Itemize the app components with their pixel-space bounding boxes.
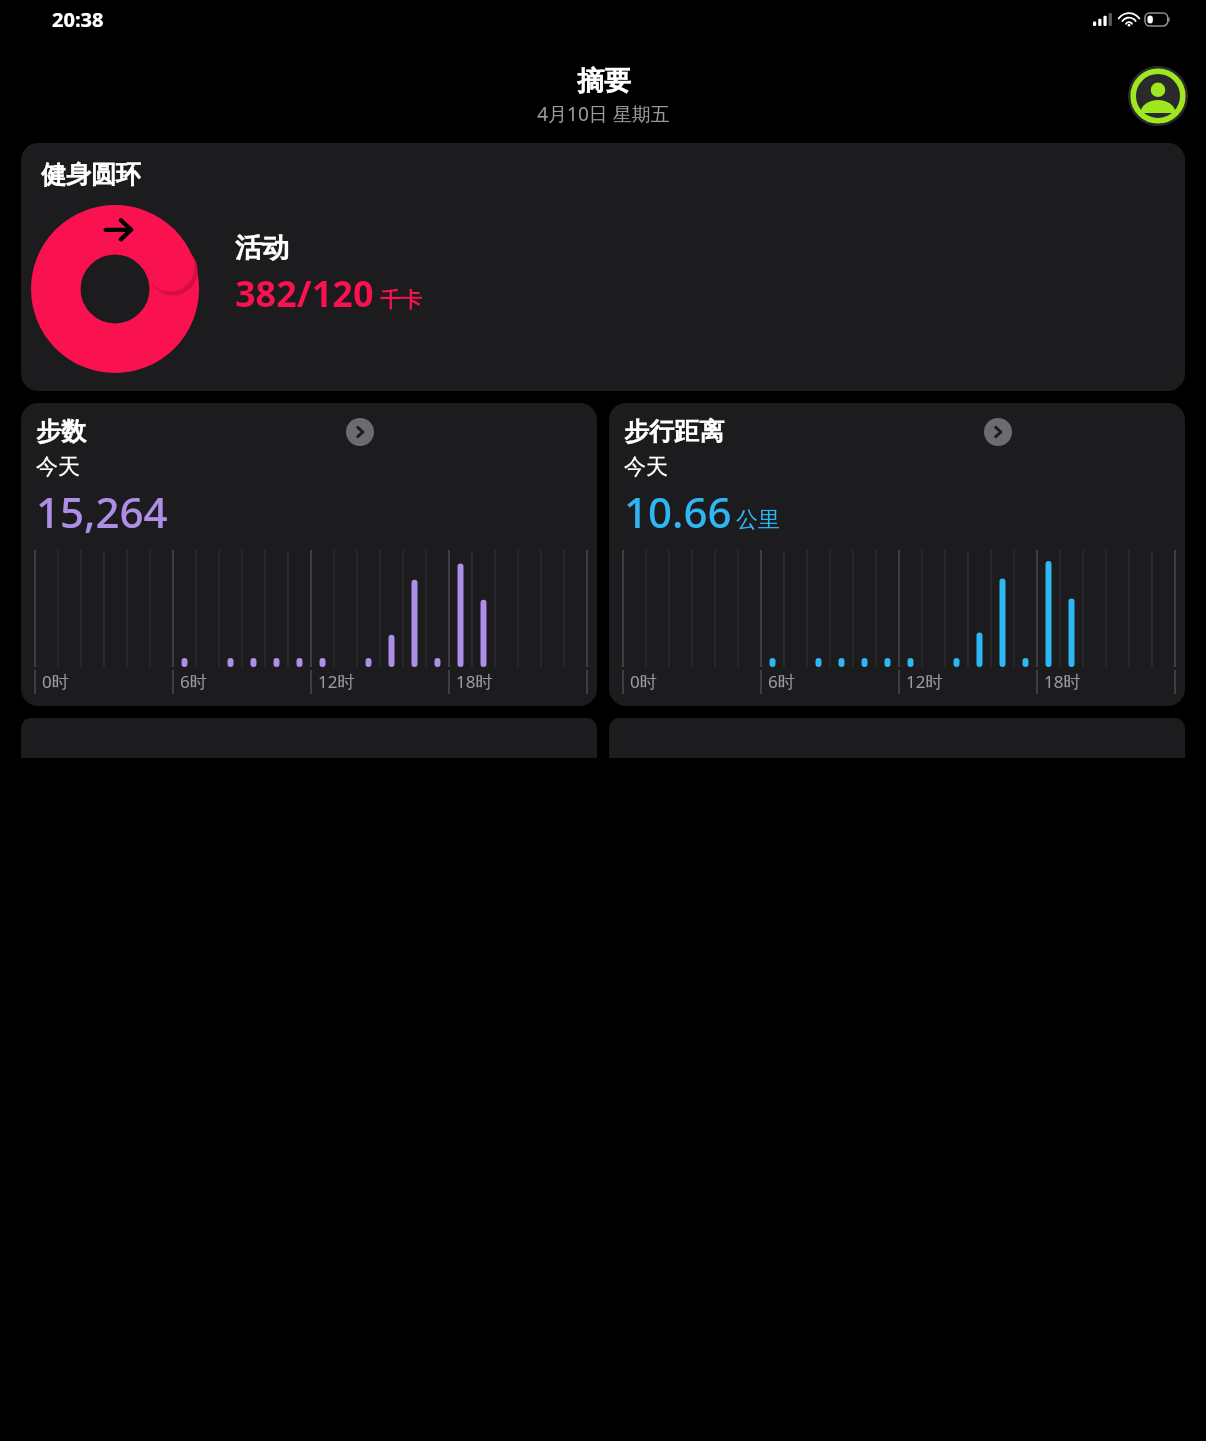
staticText: 15,264 (36, 483, 168, 540)
staticText: 0时 (630, 670, 657, 693)
staticText: 18时 (1044, 670, 1081, 693)
staticText: 12时 (318, 670, 355, 693)
staticText: 今天 (36, 453, 80, 481)
staticText: 步行距离 (624, 416, 724, 447)
button[interactable]: 健身圆环 (21, 143, 1185, 391)
staticText: 12时 (906, 670, 943, 693)
staticText: 20:38 (52, 6, 104, 33)
button[interactable]: Profile (1127, 65, 1189, 127)
staticText: 382/120 (235, 269, 374, 318)
staticText: 今天 (624, 453, 668, 481)
staticText: 摘要 (577, 64, 631, 98)
staticText: 6时 (768, 670, 795, 693)
staticText: 6时 (180, 670, 207, 693)
staticText: 0时 (42, 670, 69, 693)
button[interactable]: Open 步行距离 (984, 418, 1012, 446)
staticText: 千卡 (380, 287, 422, 313)
staticText: 18时 (456, 670, 493, 693)
staticText: 公里 (736, 506, 780, 534)
staticText: 4月10日 星期五 (537, 101, 670, 127)
button[interactable]: 步行距离 (609, 403, 1185, 706)
button[interactable]: Open 步数 (346, 418, 374, 446)
staticText: 健身圆环 (41, 159, 141, 190)
staticText: 步数 (36, 416, 86, 447)
staticText: 10.66 (624, 483, 732, 540)
staticText: 活动 (235, 231, 289, 265)
button[interactable]: 步数 (21, 403, 597, 706)
